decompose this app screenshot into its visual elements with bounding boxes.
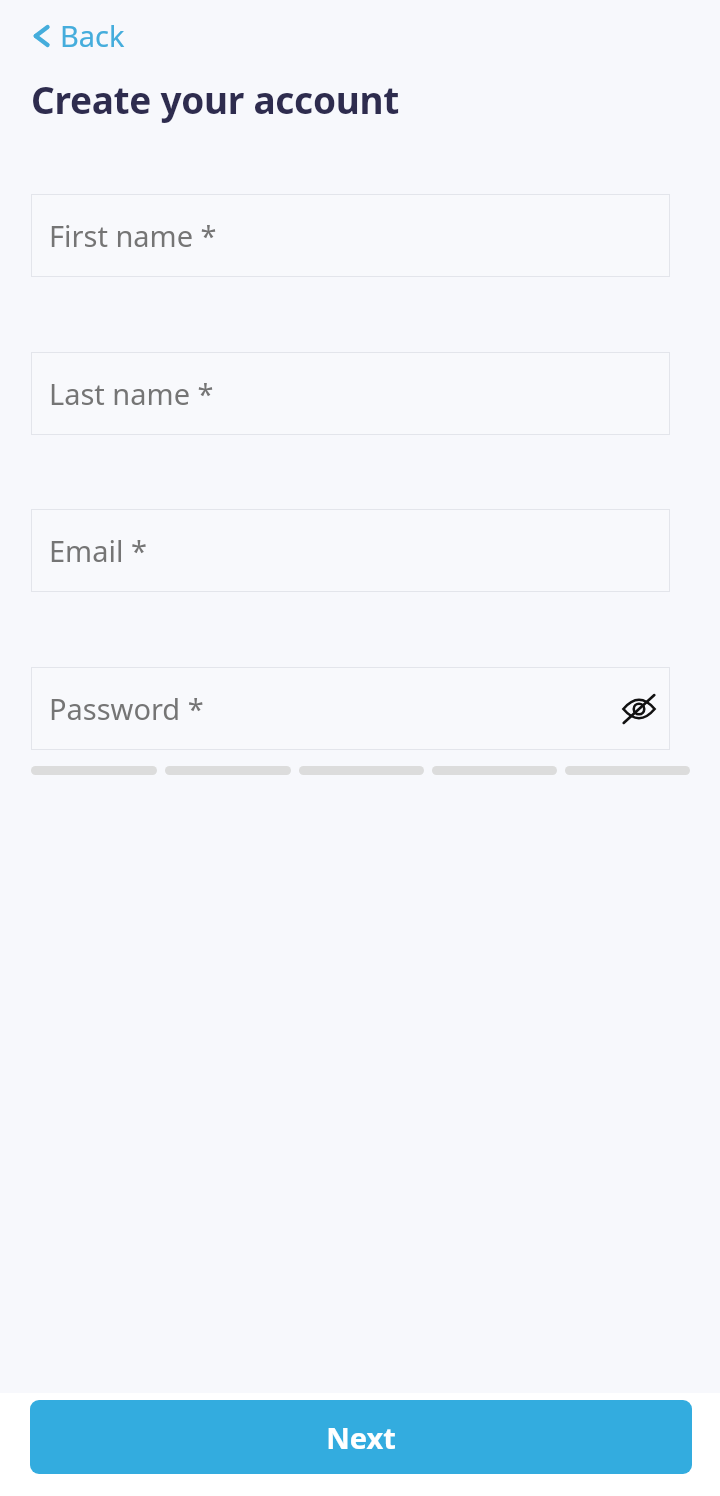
button[interactable]: Back <box>22 10 133 61</box>
staticText: Back <box>60 16 125 55</box>
button[interactable]: Email * <box>31 509 670 592</box>
staticText: Last name * <box>49 374 214 413</box>
button[interactable]: Last name * <box>31 352 670 435</box>
button[interactable]: Password * <box>31 667 670 750</box>
staticText: First name * <box>49 216 217 255</box>
button[interactable]: First name * <box>31 194 670 277</box>
staticText: Password * <box>49 689 204 728</box>
staticText: Next <box>326 1418 396 1457</box>
button[interactable]: Show password <box>614 684 664 734</box>
staticText: Create your account <box>31 74 399 124</box>
staticText: Email * <box>49 531 147 570</box>
button[interactable]: Next <box>30 1400 692 1474</box>
